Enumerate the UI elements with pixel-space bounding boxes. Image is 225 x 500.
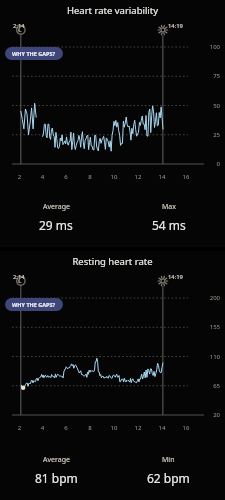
staticText: 10: [102, 173, 126, 181]
staticText: 20: [190, 411, 220, 419]
staticText: 10: [102, 424, 126, 432]
button[interactable]: WHY THE GAPS?: [5, 47, 63, 60]
staticText: 8: [78, 424, 102, 432]
staticText: 12: [126, 424, 150, 432]
button[interactable]: WHY THE GAPS?: [5, 298, 63, 311]
staticText: 6: [54, 424, 78, 432]
staticText: 14: [150, 424, 174, 432]
staticText: 75: [190, 72, 220, 80]
staticText: 65: [190, 382, 220, 390]
staticText: 14:19: [168, 273, 183, 281]
staticText: Max: [162, 202, 176, 212]
staticText: WHY THE GAPS?: [12, 50, 56, 57]
staticText: 81 bpm: [35, 470, 78, 486]
staticText: 12: [126, 173, 150, 181]
staticText: 2: [8, 173, 31, 181]
staticText: 0: [190, 160, 220, 168]
staticText: Average: [43, 455, 70, 465]
staticText: 4: [31, 173, 54, 181]
staticText: 2:14: [13, 22, 25, 30]
staticText: WHY THE GAPS?: [12, 301, 56, 308]
staticText: 14:19: [168, 22, 183, 30]
staticText: 54 ms: [152, 217, 186, 233]
staticText: 200: [190, 294, 220, 302]
staticText: 29 ms: [39, 217, 73, 233]
staticText: Heart rate variability: [0, 4, 225, 17]
staticText: 25: [190, 131, 220, 139]
staticText: 155: [190, 323, 220, 331]
staticText: 6: [54, 173, 78, 181]
staticText: 8: [78, 173, 102, 181]
staticText: 2:14: [13, 273, 25, 281]
staticText: 2: [8, 424, 31, 432]
staticText: 14: [150, 173, 174, 181]
staticText: Min: [162, 455, 175, 465]
staticText: 110: [190, 353, 220, 361]
staticText: 4: [31, 424, 54, 432]
staticText: Average: [43, 202, 70, 212]
staticText: 50: [190, 102, 220, 110]
staticText: Resting heart rate: [0, 255, 225, 268]
staticText: 62 bpm: [147, 470, 190, 486]
staticText: 16: [174, 424, 198, 432]
staticText: 100: [190, 43, 220, 51]
staticText: 16: [174, 173, 198, 181]
